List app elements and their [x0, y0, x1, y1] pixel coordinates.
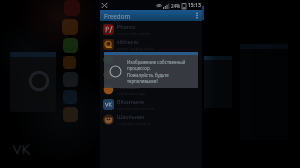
button[interactable]: ВКонтакте [100, 97, 202, 112]
staticText: Phonto [117, 23, 136, 30]
staticText: com.youthhc.phonto [117, 31, 151, 36]
staticText: GO Keyboard [117, 53, 151, 60]
staticText: ru.agusha.schoolboy [117, 121, 151, 126]
staticText: Freedom [117, 83, 140, 90]
button[interactable]: Школьник [100, 112, 202, 127]
staticText: ВКонтакте [117, 98, 145, 105]
staticText: Изображение собственный [127, 59, 186, 65]
staticText: 24% [171, 3, 181, 9]
staticText: air.com.hypah.io.slither [117, 46, 154, 51]
button[interactable]: More options [192, 10, 202, 21]
staticText: терпеливыми! [127, 78, 158, 84]
button[interactable]: Mobizen [100, 67, 202, 82]
staticText: Freedom [104, 12, 131, 20]
staticText: com.freedom.app [117, 91, 146, 96]
button[interactable]: GO Keyboard [100, 52, 202, 67]
staticText: процессор. [127, 65, 151, 71]
staticText: Школьник [117, 113, 145, 120]
button[interactable]: Phonto [100, 22, 202, 37]
staticText: com.rsupport.mobizen.sec [117, 76, 160, 81]
staticText: com.vkontakte.android [117, 106, 154, 111]
staticText: Пожалуйста, будьте [127, 72, 169, 78]
button[interactable]: slither.io [100, 37, 202, 52]
staticText: com.jb.emoji.gokeyboard [117, 61, 158, 66]
staticText: slither.io [117, 38, 139, 45]
staticText: 15:13 [188, 2, 201, 9]
staticText: Mobizen [117, 68, 139, 75]
button[interactable]: Freedom [100, 82, 202, 97]
